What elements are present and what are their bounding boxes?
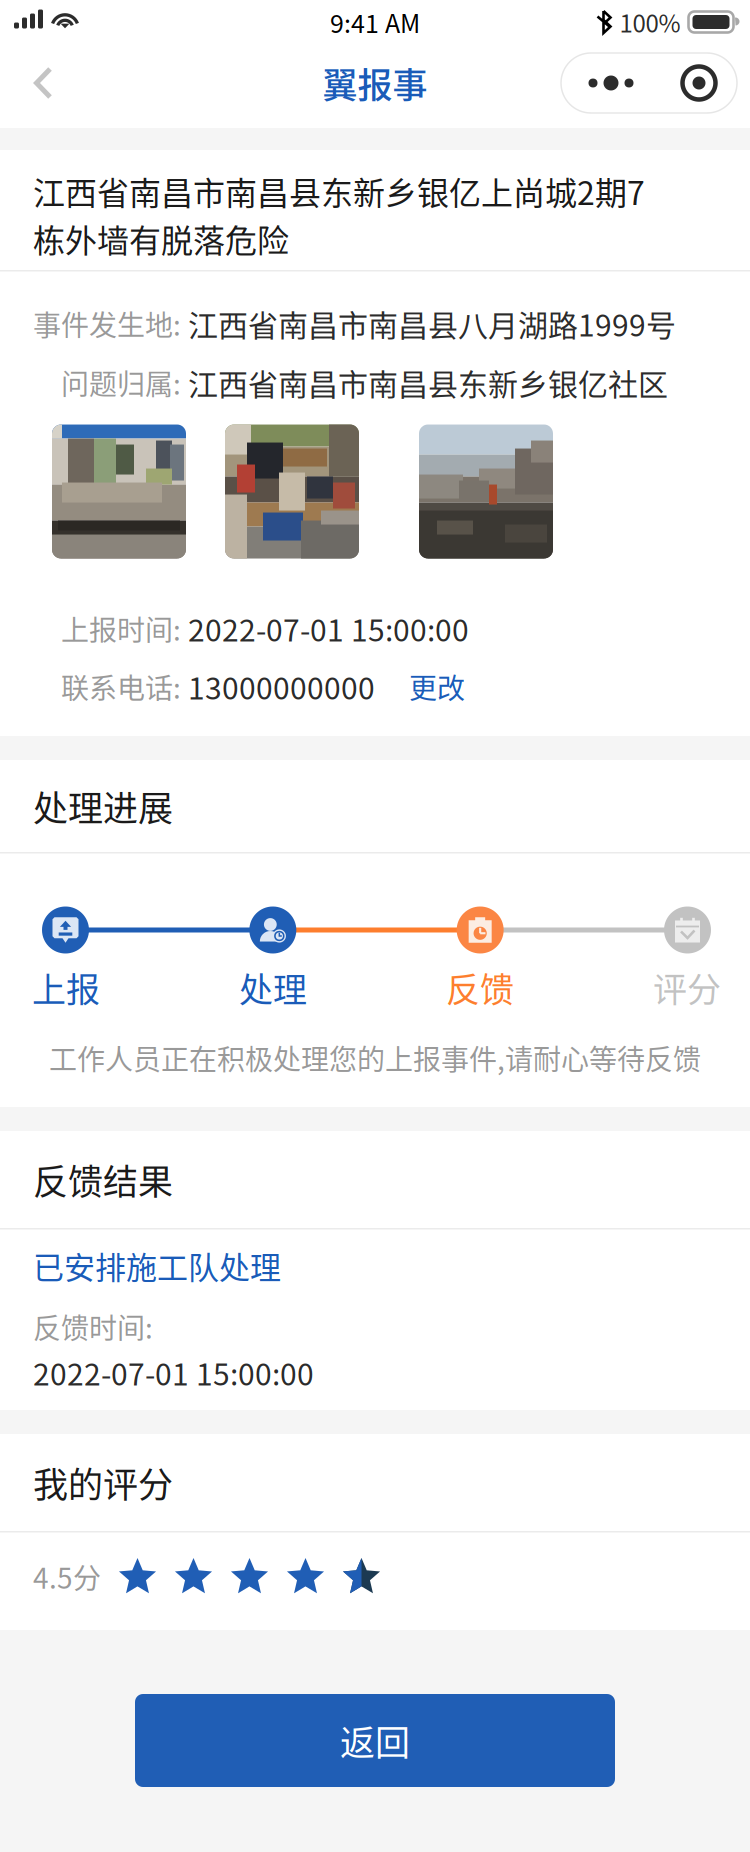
staticText: 反馈 bbox=[446, 963, 514, 1012]
staticText: 翼报事 bbox=[322, 58, 427, 108]
staticText: 处理进展 bbox=[33, 781, 173, 831]
staticText: 反馈时间: bbox=[33, 1306, 153, 1347]
staticText: 江西省南昌市南昌县东新乡银亿社区 bbox=[188, 361, 668, 404]
staticText: 返回 bbox=[340, 1715, 410, 1766]
button[interactable]: 更改 bbox=[375, 658, 479, 715]
staticText: 我的评分 bbox=[33, 1457, 173, 1508]
staticText: 工作人员正在积极处理您的上报事件,请耐心等待反馈 bbox=[49, 1037, 701, 1078]
staticText: 13000000000 bbox=[188, 665, 375, 708]
button[interactable]: Back bbox=[15, 55, 71, 117]
staticText: 评分 bbox=[653, 963, 721, 1012]
staticText: 上报时间: bbox=[61, 608, 181, 649]
staticText: 更改 bbox=[409, 666, 465, 707]
staticText: 反馈结果 bbox=[33, 1154, 173, 1205]
staticText: 已安排施工队处理 bbox=[33, 1243, 281, 1288]
staticText: 处理 bbox=[239, 963, 307, 1012]
button[interactable]: 返回 bbox=[135, 1694, 615, 1787]
staticText: 2022-07-01 15:00:00 bbox=[188, 607, 469, 650]
staticText: 2022-07-01 15:00:00 bbox=[33, 1351, 314, 1394]
staticText: 100% bbox=[619, 5, 680, 39]
staticText: 江西省南昌市南昌县东新乡银亿上尚城2期7栋外墙有脱落危险 bbox=[33, 168, 645, 262]
button[interactable]: Close bbox=[661, 53, 737, 113]
staticText: 联系电话: bbox=[61, 666, 181, 707]
staticText: 上报 bbox=[32, 963, 100, 1012]
staticText: 4.5分 bbox=[33, 1556, 101, 1597]
staticText: 问题归属: bbox=[61, 362, 181, 403]
staticText: 事件发生地: bbox=[33, 303, 181, 344]
staticText: 江西省南昌市南昌县八月湖路1999号 bbox=[188, 302, 676, 345]
staticText: 9:41 AM bbox=[330, 4, 420, 40]
button[interactable]: More bbox=[561, 53, 661, 113]
